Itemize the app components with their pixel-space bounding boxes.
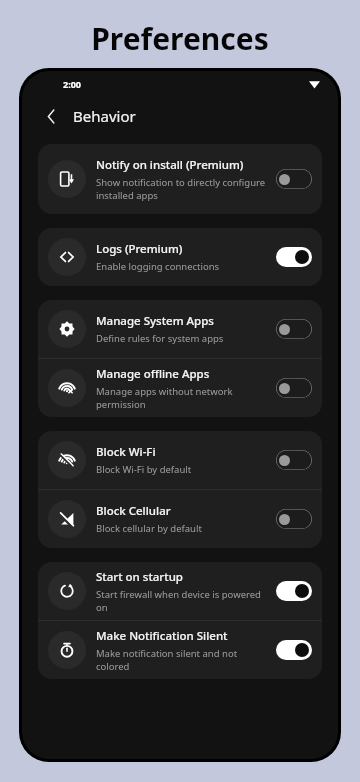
staticText: Enable logging connections [96,260,220,273]
staticText: Manage apps without network permission [96,385,270,411]
staticText: Make Notification Silent [96,628,228,644]
staticText: Preferences [0,18,360,59]
button[interactable]: Toggle off [276,509,312,529]
staticText: Logs (Premium) [96,241,183,257]
button[interactable]: Start on startup [38,562,322,620]
button[interactable]: Toggle off [276,319,312,339]
button[interactable]: Logs (Premium) [38,228,322,286]
staticText: Manage offline Apps [96,366,210,382]
button[interactable]: Toggle off [276,450,312,470]
button[interactable]: Block Cellular [38,490,322,548]
staticText: Show notification to directly configure … [96,176,266,202]
button[interactable]: Toggle on [276,640,312,660]
button[interactable]: Block Wi-Fi [38,431,322,489]
staticText: 2:00 [63,78,81,90]
button[interactable]: Toggle on [276,581,312,601]
staticText: Block Wi-Fi by default [96,463,192,476]
button[interactable]: Manage System Apps [38,300,322,358]
button[interactable]: Notify on install (Premium) [38,144,322,214]
button[interactable]: Toggle off [276,378,312,398]
button[interactable]: Toggle off [276,169,312,189]
button[interactable]: Back [36,101,66,131]
staticText: Behavior [73,106,136,126]
staticText: Block cellular by default [96,522,202,535]
button[interactable]: Toggle on [276,247,312,267]
button[interactable]: Manage offline Apps [38,359,322,417]
staticText: Start firewall when device is powered on [96,588,270,614]
staticText: Manage System Apps [96,313,214,329]
staticText: Block Cellular [96,503,171,519]
staticText: Define rules for system apps [96,332,224,345]
staticText: Block Wi-Fi [96,444,156,460]
staticText: Start on startup [96,569,183,585]
staticText: Make notification silent and not colored [96,647,270,673]
staticText: Notify on install (Premium) [96,157,244,173]
button[interactable]: Make Notification Silent [38,621,322,679]
